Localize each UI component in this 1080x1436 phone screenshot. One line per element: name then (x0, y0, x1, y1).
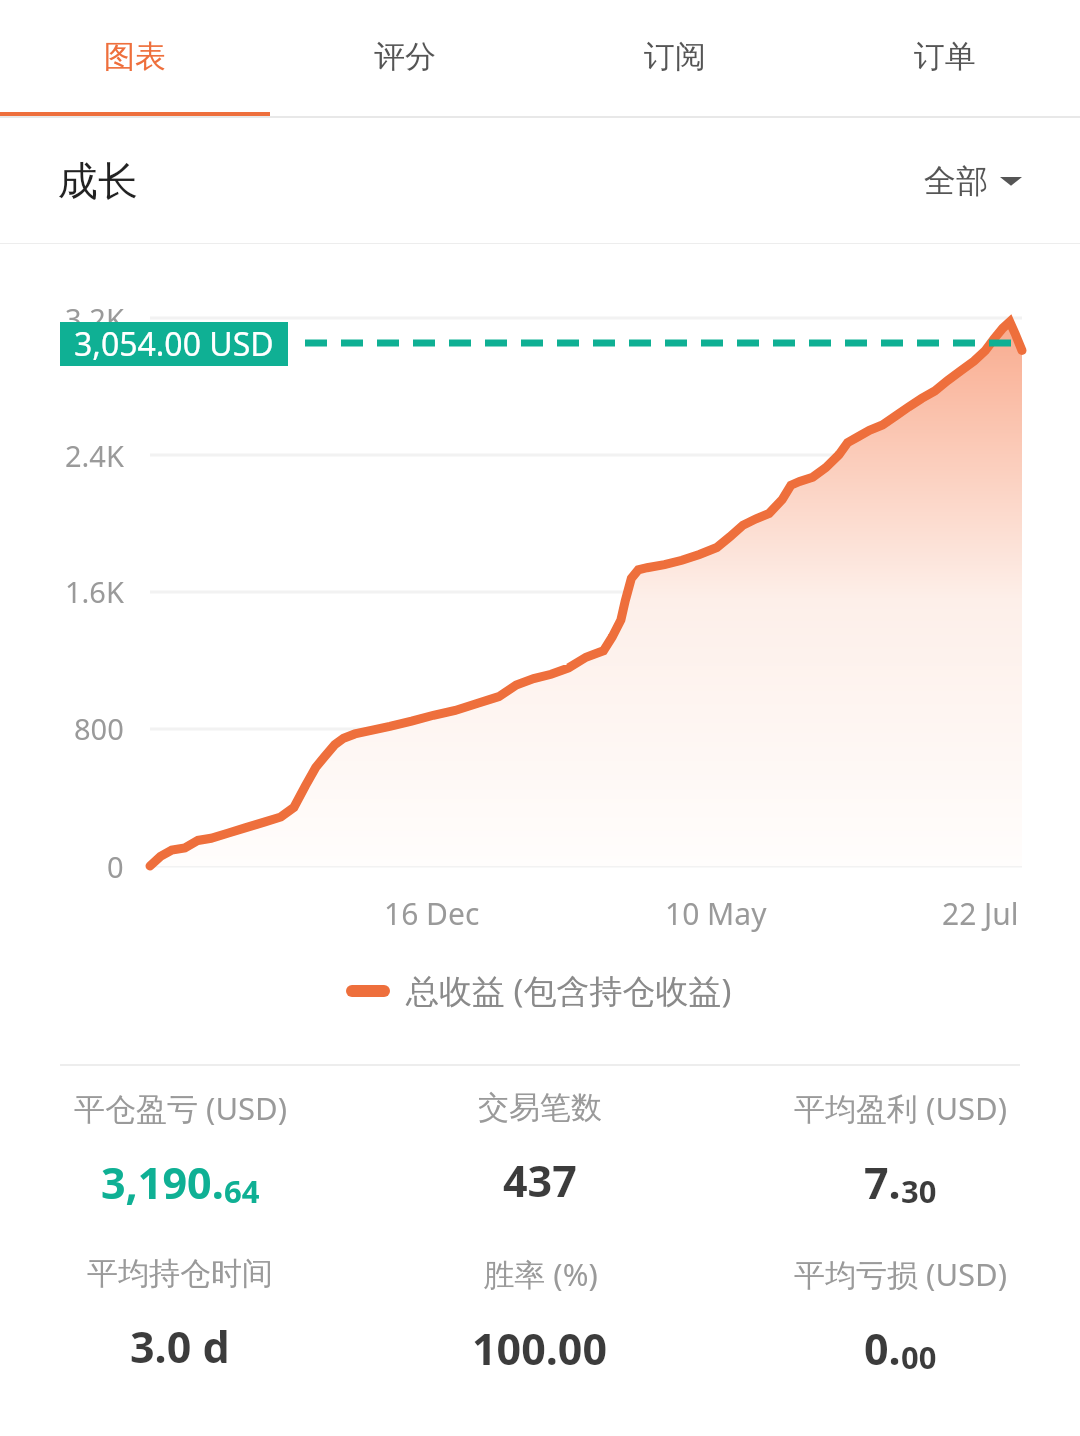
button[interactable]: 交易笔数 (360, 1066, 720, 1232)
other: Filter (1000, 170, 1022, 192)
staticText: 订阅 (644, 37, 706, 76)
button[interactable]: 平均盈利 (USD) (720, 1066, 1080, 1232)
staticText: 64 (224, 1170, 260, 1212)
button[interactable]: 平仓盈亏 (USD) (0, 1066, 360, 1232)
staticText: 0 (107, 847, 124, 886)
staticText: 图表 (104, 37, 166, 76)
staticText: 平仓盈亏 (USD) (74, 1087, 287, 1129)
staticText: 1.6K (65, 572, 124, 611)
staticText: 评分 (374, 37, 436, 76)
staticText: 7. (864, 1153, 901, 1212)
staticText: 22 Jul (942, 893, 1019, 934)
staticText: 3,054.00 USD (74, 322, 274, 366)
staticText: 2.4K (65, 436, 124, 475)
staticText: 平均盈利 (USD) (794, 1087, 1007, 1129)
staticText: 胜率 (%) (483, 1253, 598, 1295)
staticText: 订单 (914, 37, 976, 76)
staticText: 0. (864, 1319, 901, 1378)
button[interactable]: 平均持仓时间 (0, 1232, 360, 1398)
staticText: 3,190. (101, 1153, 224, 1212)
button[interactable]: 胜率 (%) (360, 1232, 720, 1398)
staticText: 3.2K (65, 299, 124, 338)
button[interactable]: 图表 (0, 0, 270, 112)
staticText: 平均持仓时间 (87, 1254, 273, 1293)
staticText: 成长 (58, 156, 138, 206)
staticText: 16 Dec (384, 893, 480, 934)
staticText: 800 (74, 709, 124, 748)
staticText: 全部 (924, 161, 988, 201)
button[interactable]: 订单 (810, 0, 1080, 112)
button[interactable]: 评分 (270, 0, 540, 112)
staticText: 100.00 (472, 1319, 608, 1378)
button[interactable]: 订阅 (540, 0, 810, 112)
staticText: 交易笔数 (478, 1088, 602, 1127)
staticText: 437 (503, 1151, 577, 1210)
staticText: 总收益 (包含持仓收益) (406, 968, 732, 1013)
staticText: 00 (901, 1336, 937, 1378)
button[interactable]: 平均亏损 (USD) (720, 1232, 1080, 1398)
staticText: 平均亏损 (USD) (794, 1253, 1007, 1295)
staticText: 10 May (665, 893, 767, 934)
staticText: 3.0 d (130, 1317, 230, 1376)
staticText: 30 (901, 1170, 937, 1212)
button[interactable]: 全部 (924, 161, 1022, 201)
